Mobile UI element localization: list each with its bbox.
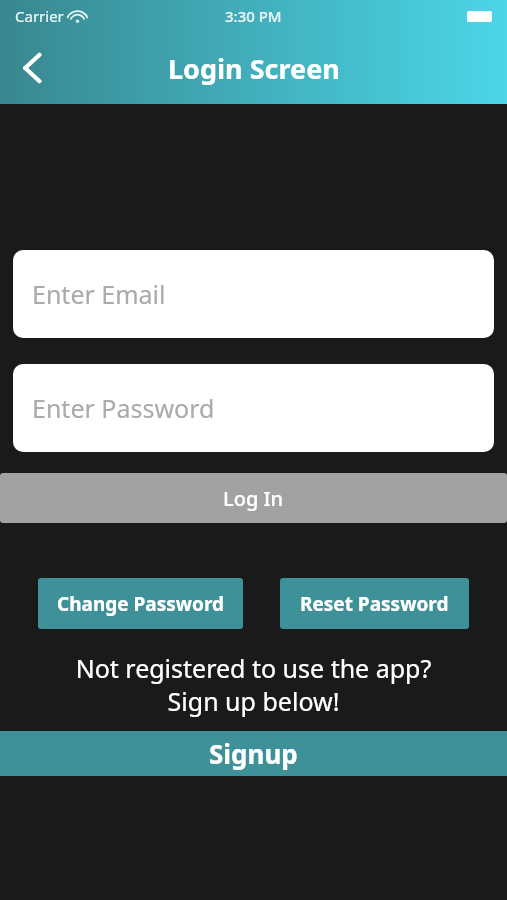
staticText: Carrier xyxy=(15,6,64,26)
staticText: Log In xyxy=(223,485,284,512)
staticText: Not registered to use the app? Sign up b… xyxy=(0,651,507,718)
button[interactable]: Enter Email xyxy=(13,250,494,338)
staticText: Login Screen xyxy=(168,50,340,87)
staticText: Enter Password xyxy=(32,391,215,425)
button[interactable]: Back xyxy=(10,46,54,90)
button[interactable]: Reset Password xyxy=(280,578,469,629)
staticText: Change Password xyxy=(57,591,225,617)
button[interactable]: Change Password xyxy=(38,578,243,629)
staticText: Enter Email xyxy=(32,277,166,311)
button[interactable]: Log In xyxy=(0,473,507,523)
button[interactable]: Signup xyxy=(0,731,507,776)
staticText: Reset Password xyxy=(300,591,449,617)
button[interactable]: Enter Password xyxy=(13,364,494,452)
staticText: 3:30 PM xyxy=(225,6,282,26)
staticText: Signup xyxy=(209,736,298,771)
